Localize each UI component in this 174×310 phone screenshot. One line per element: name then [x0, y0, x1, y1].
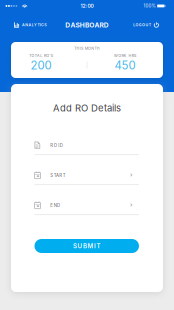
staticText: THIS MONTH: [74, 46, 100, 51]
staticText: 450: [114, 58, 135, 72]
staticText: END: [50, 203, 60, 208]
staticText: RO ID: [50, 143, 63, 148]
staticText: Add RO Details: [53, 102, 121, 114]
staticText: WORK HRS: [114, 53, 136, 58]
staticText: TOTAL RO'S: [29, 53, 53, 58]
staticText: 200: [30, 58, 51, 72]
button[interactable]: LOGOUT: [133, 19, 159, 31]
staticText: 100%: [143, 3, 155, 9]
button[interactable]: ANALYTICS: [14, 19, 48, 31]
staticText: 12:00: [80, 3, 93, 9]
staticText: LOGOUT: [133, 23, 151, 27]
staticText: ANALYTICS: [22, 23, 46, 27]
button[interactable]: END: [34, 200, 139, 216]
staticText: SUBMIT: [73, 242, 100, 250]
button[interactable]: RO ID: [34, 140, 139, 156]
button[interactable]: SUBMIT: [34, 239, 139, 253]
staticText: DASHBOARD: [65, 21, 109, 29]
button[interactable]: START: [34, 170, 139, 186]
staticText: START: [50, 173, 66, 178]
